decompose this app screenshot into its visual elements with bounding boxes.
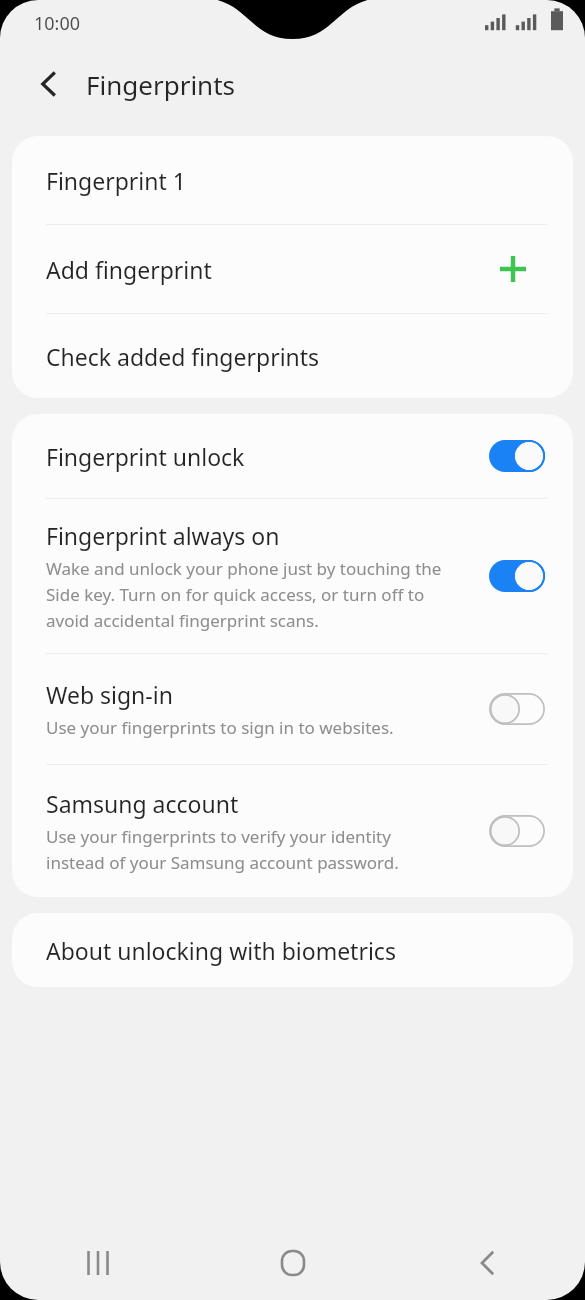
button[interactable]: Samsung account bbox=[12, 765, 573, 897]
button[interactable]: Add fingerprint bbox=[12, 225, 573, 313]
staticText: Fingerprint unlock bbox=[46, 441, 245, 472]
button[interactable]: Switch on bbox=[489, 440, 545, 472]
staticText: About unlocking with biometrics bbox=[46, 935, 396, 966]
staticText: Wake and unlock your phone just by touch… bbox=[46, 557, 442, 632]
button[interactable]: Recents bbox=[0, 1226, 195, 1300]
button[interactable]: Check added fingerprints bbox=[12, 314, 573, 398]
staticText: Fingerprints bbox=[86, 67, 236, 102]
staticText: Web sign-in bbox=[46, 679, 173, 710]
staticText: Fingerprint always on bbox=[46, 520, 280, 551]
button[interactable]: Switch off bbox=[489, 815, 545, 847]
staticText: Use your fingerprints to verify your ide… bbox=[46, 825, 399, 874]
button[interactable]: Fingerprint always on bbox=[12, 499, 573, 653]
button[interactable]: Switch off bbox=[489, 693, 545, 725]
button[interactable]: About unlocking with biometrics bbox=[12, 913, 573, 987]
staticText: Add fingerprint bbox=[46, 254, 212, 285]
button[interactable]: Fingerprint 1 bbox=[12, 136, 573, 224]
button[interactable]: Web sign-in bbox=[12, 654, 573, 764]
staticText: 10:00 bbox=[34, 11, 81, 36]
button[interactable]: Home bbox=[195, 1226, 390, 1300]
staticText: Fingerprint 1 bbox=[46, 165, 186, 196]
staticText: Samsung account bbox=[46, 788, 239, 819]
button[interactable]: Back bbox=[22, 57, 76, 111]
button[interactable]: Switch on bbox=[489, 560, 545, 592]
button[interactable]: Fingerprint unlock bbox=[12, 414, 573, 498]
staticText: Check added fingerprints bbox=[46, 341, 320, 372]
staticText: Use your fingerprints to sign in to webs… bbox=[46, 716, 394, 739]
button[interactable]: Back bbox=[390, 1226, 585, 1300]
